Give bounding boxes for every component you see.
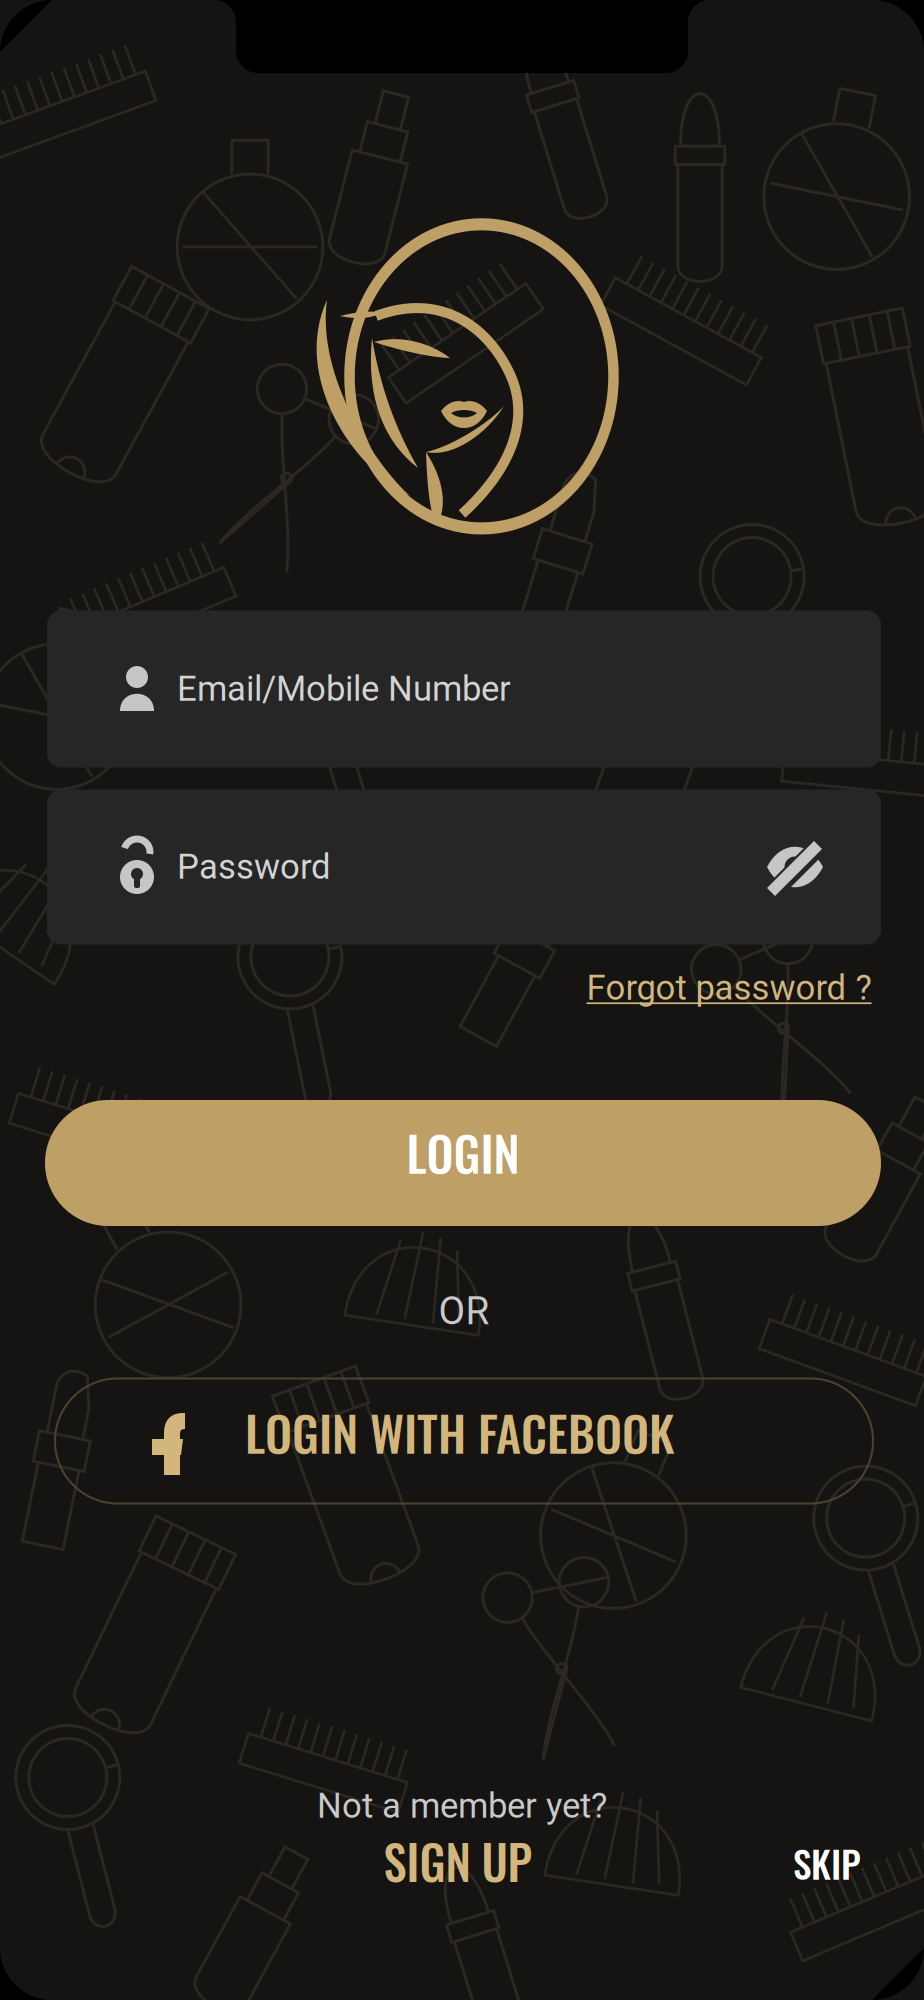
- button[interactable]: SIGN UP: [383, 1826, 532, 1896]
- button[interactable]: LOGIN: [45, 1100, 881, 1226]
- staticText: Email/Mobile Number: [177, 669, 511, 709]
- staticText: SIGN UP: [383, 1826, 532, 1896]
- staticText: OR: [438, 1288, 489, 1334]
- button[interactable]: LOGIN WITH FACEBOOK: [55, 1378, 873, 1503]
- staticText: SKIP: [793, 1835, 861, 1891]
- button[interactable]: SKIP: [793, 1835, 861, 1891]
- button[interactable]: Forgot password ?: [586, 968, 871, 1008]
- staticText: LOGIN: [406, 1116, 519, 1187]
- staticText: Forgot password ?: [586, 968, 871, 1008]
- staticText: LOGIN WITH FACEBOOK: [245, 1396, 675, 1467]
- staticText: Password: [177, 847, 331, 887]
- staticText: Not a member yet?: [317, 1786, 607, 1826]
- button[interactable]: Show password: [763, 838, 827, 896]
